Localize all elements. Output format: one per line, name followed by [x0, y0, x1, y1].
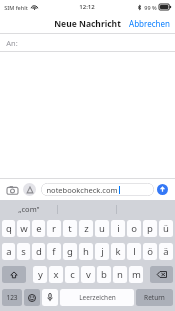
button[interactable]: c: [65, 266, 79, 283]
staticText: q: [6, 222, 12, 235]
button[interactable]: i: [111, 220, 125, 237]
button[interactable]: x: [49, 266, 63, 283]
staticText: j: [101, 245, 104, 258]
staticText: Abbrechen: [129, 18, 170, 29]
staticText: notebookcheck.com: [46, 185, 118, 195]
staticText: c: [70, 268, 75, 281]
button[interactable]: h: [79, 243, 93, 260]
button[interactable]: Return: [136, 289, 173, 306]
button[interactable]: v: [81, 266, 95, 283]
staticText: d: [36, 245, 42, 258]
staticText: x: [53, 268, 59, 281]
staticText: An:: [6, 38, 18, 48]
staticText: h: [83, 245, 89, 258]
button[interactable]: Löschen: [150, 266, 173, 283]
staticText: b: [101, 268, 107, 281]
staticText: „com": [18, 204, 40, 214]
staticText: Neue Nachricht: [54, 18, 121, 30]
button[interactable]: z: [79, 220, 93, 237]
staticText: f: [52, 245, 56, 258]
button[interactable]: „com": [0, 200, 57, 218]
staticText: g: [67, 245, 73, 258]
staticText: 99 %: [144, 4, 157, 11]
button[interactable]: d: [32, 243, 45, 260]
button[interactable]: s: [17, 243, 30, 260]
button[interactable]: notebookcheck.com: [41, 183, 154, 196]
button[interactable]: 123: [2, 289, 22, 306]
staticText: m: [132, 268, 141, 281]
button[interactable]: Kamera: [5, 183, 19, 197]
button[interactable]: m: [129, 266, 143, 283]
button[interactable]: q: [2, 220, 15, 237]
staticText: 123: [6, 293, 18, 302]
button[interactable]: Diktieren: [42, 289, 58, 306]
button[interactable]: a: [2, 243, 15, 260]
staticText: s: [21, 245, 26, 258]
button[interactable]: Leerzeichen: [60, 289, 134, 306]
button[interactable]: ü: [159, 220, 173, 237]
button[interactable]: Emoji: [24, 289, 40, 306]
button[interactable]: Senden: [157, 184, 168, 195]
button[interactable]: k: [111, 243, 125, 260]
button[interactable]: p: [143, 220, 157, 237]
button[interactable]: j: [95, 243, 109, 260]
staticText: i: [117, 222, 120, 235]
staticText: 12:12: [79, 3, 95, 11]
button[interactable]: Apps: [23, 183, 36, 196]
button[interactable]: f: [47, 243, 61, 260]
button[interactable]: b: [97, 266, 111, 283]
staticText: ö: [147, 245, 153, 258]
button[interactable]: r: [47, 220, 61, 237]
staticText: l: [133, 245, 136, 258]
button[interactable]: ö: [143, 243, 157, 260]
staticText: k: [115, 245, 121, 258]
staticText: n: [117, 268, 123, 281]
button[interactable]: n: [113, 266, 127, 283]
button[interactable]: t: [63, 220, 77, 237]
staticText: ü: [163, 222, 169, 235]
button[interactable]: e: [32, 220, 45, 237]
button[interactable]: g: [63, 243, 77, 260]
staticText: ä: [163, 245, 169, 258]
button[interactable]: o: [127, 220, 141, 237]
button[interactable]: l: [127, 243, 141, 260]
staticText: u: [99, 222, 105, 235]
staticText: r: [52, 222, 56, 235]
staticText: z: [84, 222, 89, 235]
staticText: y: [38, 268, 43, 281]
button[interactable]: Umschalt: [2, 266, 26, 283]
button[interactable]: y: [33, 266, 47, 283]
button[interactable]: An:: [0, 34, 175, 51]
button[interactable]: w: [17, 220, 30, 237]
staticText: o: [131, 222, 137, 235]
staticText: w: [20, 222, 28, 235]
button[interactable]: u: [95, 220, 109, 237]
staticText: a: [6, 245, 12, 258]
button[interactable]: ä: [159, 243, 173, 260]
staticText: v: [86, 268, 91, 281]
staticText: SIM fehlt: [4, 4, 28, 11]
staticText: t: [68, 222, 72, 235]
staticText: Return: [144, 293, 165, 302]
staticText: e: [36, 222, 42, 235]
staticText: p: [147, 222, 153, 235]
button[interactable]: Abbrechen: [129, 18, 170, 29]
staticText: Leerzeichen: [79, 293, 116, 302]
